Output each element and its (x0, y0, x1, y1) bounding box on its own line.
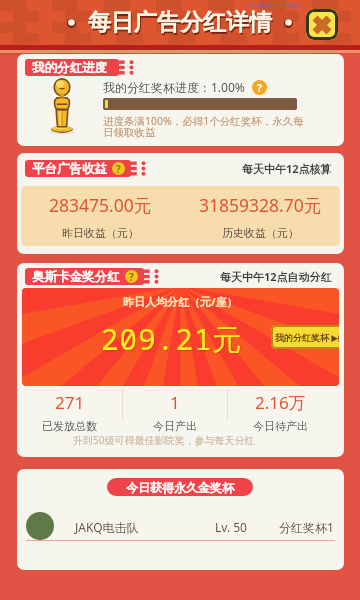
staticText: 209.21元 (102, 320, 244, 360)
staticText: 我的分红奖杯 ▶▶ (275, 331, 339, 343)
staticText: ? (116, 162, 121, 175)
staticText: 进度条满100%，必得1个分红奖杯，永久每 日领取收益 (103, 114, 304, 139)
staticText: ? (257, 81, 262, 95)
staticText: 已发放总数 (42, 419, 97, 433)
staticText: 每天中午12点自动分红 (220, 269, 332, 284)
button[interactable]: Close (306, 9, 338, 40)
staticText: 每日广告分红详情 (88, 8, 272, 37)
staticText: 今日待产出 (253, 419, 308, 433)
button[interactable]: 我的分红奖杯 ▶▶ (271, 325, 339, 349)
staticText: 升到50级可得最佳影院奖，参与每天分红 (73, 433, 255, 447)
staticText: Lv. 50 (215, 519, 247, 535)
staticText: 今日产出 (153, 419, 197, 433)
staticText: 每日广告分红详情 (89, 10, 273, 39)
staticText: 2.16万 (255, 391, 306, 414)
staticText: 209.21元 (101, 319, 243, 359)
staticText: 271 (55, 391, 85, 414)
staticText: 1 (170, 391, 180, 414)
staticText: 我的分红奖杯进度：1.00% (103, 79, 245, 95)
staticText: 今日获得永久金奖杯 (126, 480, 234, 495)
staticText: 31859328.70元 (199, 193, 322, 217)
staticText: JAKQ电击队 (75, 519, 139, 535)
staticText: 每天中午12点核算 (242, 161, 332, 176)
staticText: 奥斯卡金奖分红 (32, 269, 120, 285)
staticText: 昨日收益（元） (62, 226, 139, 240)
staticText: 1.0.69.02237903 (246, 1, 300, 11)
staticText: 283475.00元 (49, 193, 152, 217)
staticText: 昨日人均分红（元/座） (123, 294, 238, 309)
staticText: 历史收益（元） (222, 226, 299, 240)
staticText: 分红奖杯1 (279, 519, 334, 535)
staticText: 我的分红进度 (32, 60, 107, 76)
staticText: ? (129, 270, 134, 283)
staticText: 平台广告收益 (32, 161, 107, 177)
